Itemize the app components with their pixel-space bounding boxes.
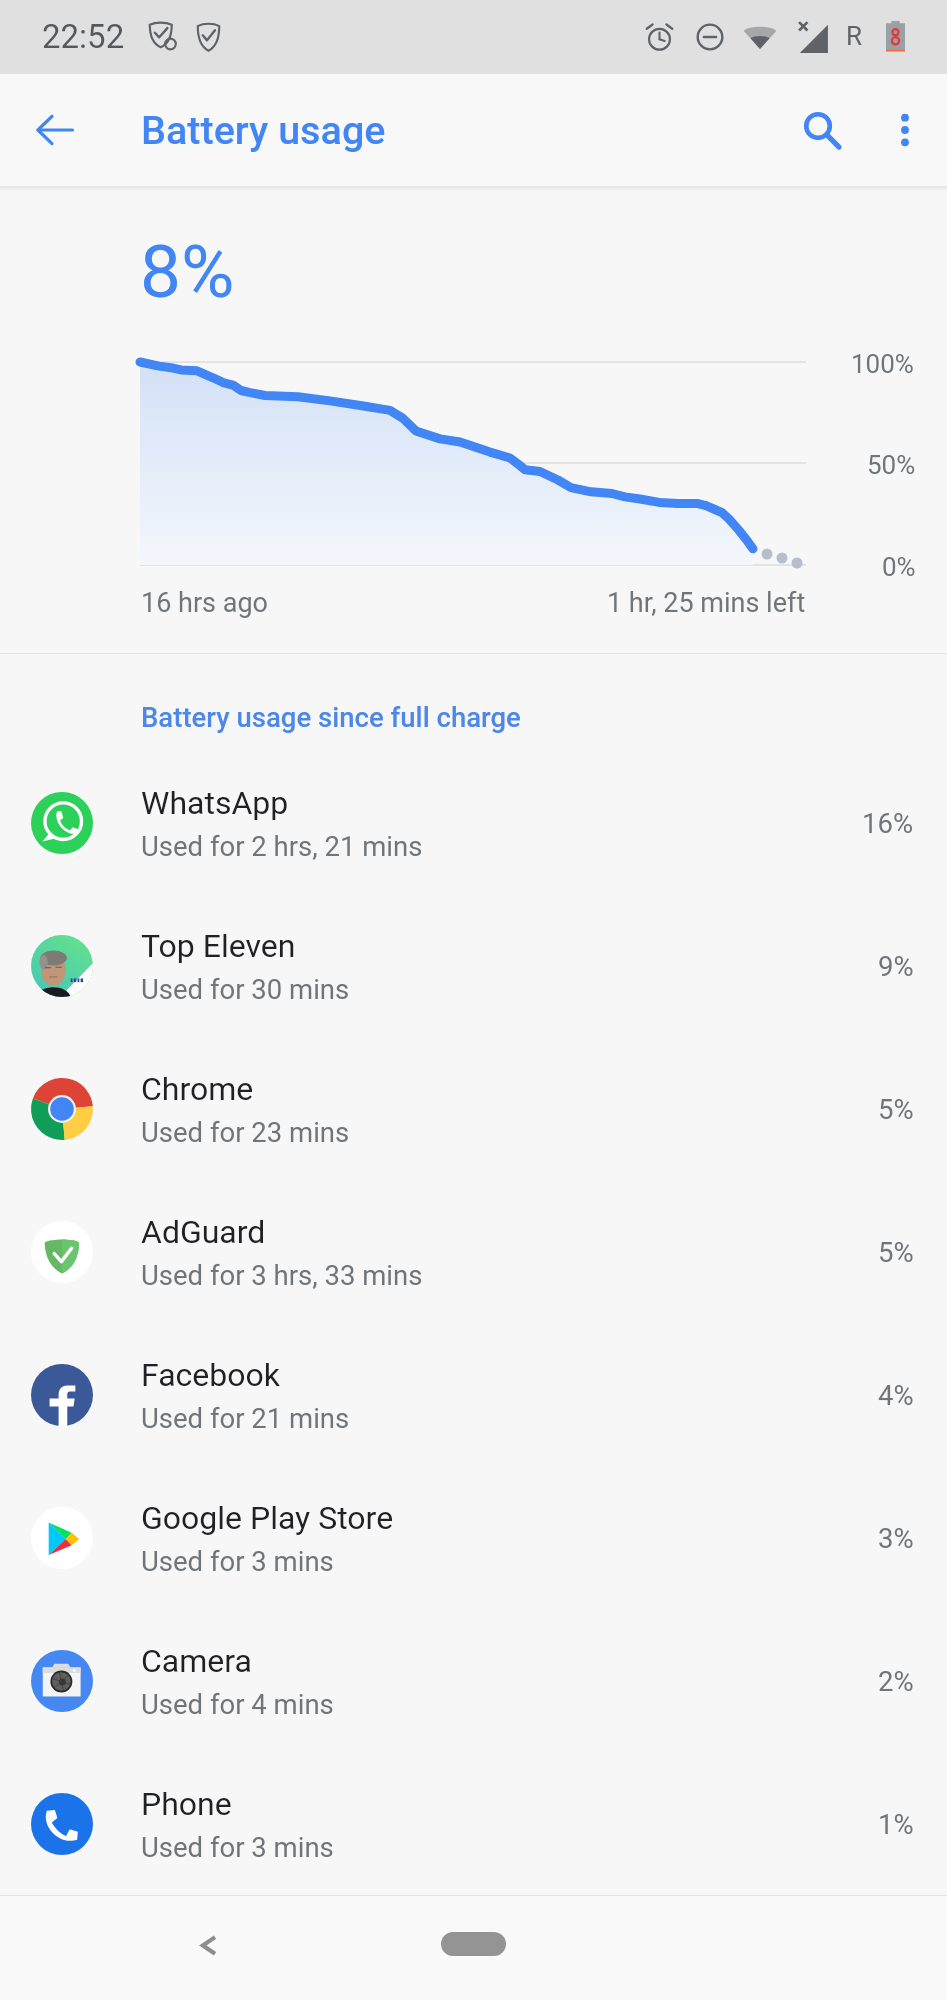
- staticText: 16 hrs ago: [141, 587, 268, 619]
- button[interactable]: Home: [441, 1932, 506, 1956]
- staticText: Used for 3 mins: [141, 1545, 334, 1577]
- staticText: R: [846, 21, 863, 51]
- staticText: Used for 4 mins: [141, 1688, 334, 1720]
- staticText: 8%: [140, 229, 235, 315]
- staticText: Used for 30 mins: [141, 973, 350, 1005]
- staticText: Battery usage: [141, 107, 386, 153]
- button[interactable]: Phone: [0, 1752, 947, 1895]
- staticText: 1%: [878, 1808, 914, 1840]
- staticText: 9%: [878, 950, 914, 982]
- staticText: 100%: [851, 349, 914, 379]
- staticText: Phone: [141, 1785, 232, 1823]
- staticText: 22:52: [42, 17, 125, 56]
- button[interactable]: Top Eleven: [0, 894, 947, 1037]
- button[interactable]: Camera: [0, 1609, 947, 1752]
- staticText: AdGuard: [141, 1213, 266, 1251]
- button[interactable]: Chrome: [0, 1037, 947, 1180]
- staticText: WhatsApp: [141, 784, 289, 822]
- staticText: 5%: [878, 1093, 914, 1125]
- button[interactable]: Back: [22, 97, 88, 163]
- button[interactable]: More options: [869, 94, 941, 166]
- staticText: 4%: [878, 1379, 914, 1411]
- staticText: 5%: [878, 1236, 914, 1268]
- staticText: 0%: [882, 552, 916, 582]
- staticText: Facebook: [141, 1356, 280, 1394]
- button[interactable]: WhatsApp: [0, 751, 947, 894]
- staticText: 50%: [867, 450, 916, 480]
- button[interactable]: Google Play Store: [0, 1466, 947, 1609]
- staticText: Used for 3 hrs, 33 mins: [141, 1259, 423, 1291]
- staticText: Top Eleven: [141, 927, 296, 965]
- staticText: 2%: [878, 1665, 914, 1697]
- staticText: 16%: [862, 807, 914, 839]
- staticText: Camera: [141, 1642, 252, 1680]
- staticText: Chrome: [141, 1070, 254, 1108]
- staticText: Used for 2 hrs, 21 mins: [141, 830, 423, 862]
- button[interactable]: Search: [786, 94, 858, 166]
- button[interactable]: Facebook: [0, 1323, 947, 1466]
- button[interactable]: AdGuard: [0, 1180, 947, 1323]
- staticText: 3%: [878, 1522, 914, 1554]
- staticText: Used for 23 mins: [141, 1116, 350, 1148]
- staticText: Google Play Store: [141, 1499, 394, 1537]
- staticText: Battery usage since full charge: [141, 701, 521, 733]
- staticText: Used for 3 mins: [141, 1831, 334, 1863]
- staticText: 1 hr, 25 mins left: [607, 587, 806, 619]
- staticText: Used for 21 mins: [141, 1402, 350, 1434]
- button[interactable]: Back: [173, 1913, 243, 1983]
